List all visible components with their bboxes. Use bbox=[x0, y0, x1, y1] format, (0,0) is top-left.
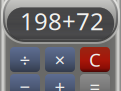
button[interactable]: − bbox=[10, 74, 40, 91]
staticText: = bbox=[89, 74, 100, 91]
button[interactable]: × bbox=[45, 47, 75, 72]
button[interactable]: + bbox=[45, 74, 75, 91]
button[interactable]: ÷ bbox=[10, 47, 40, 72]
staticText: ÷ bbox=[19, 47, 30, 72]
button[interactable]: C bbox=[80, 47, 110, 72]
staticText: − bbox=[19, 74, 30, 91]
button[interactable]: = bbox=[80, 74, 110, 91]
staticText: C bbox=[89, 47, 101, 72]
staticText: 198+72 bbox=[20, 5, 104, 37]
staticText: × bbox=[54, 47, 65, 72]
staticText: + bbox=[54, 74, 65, 91]
